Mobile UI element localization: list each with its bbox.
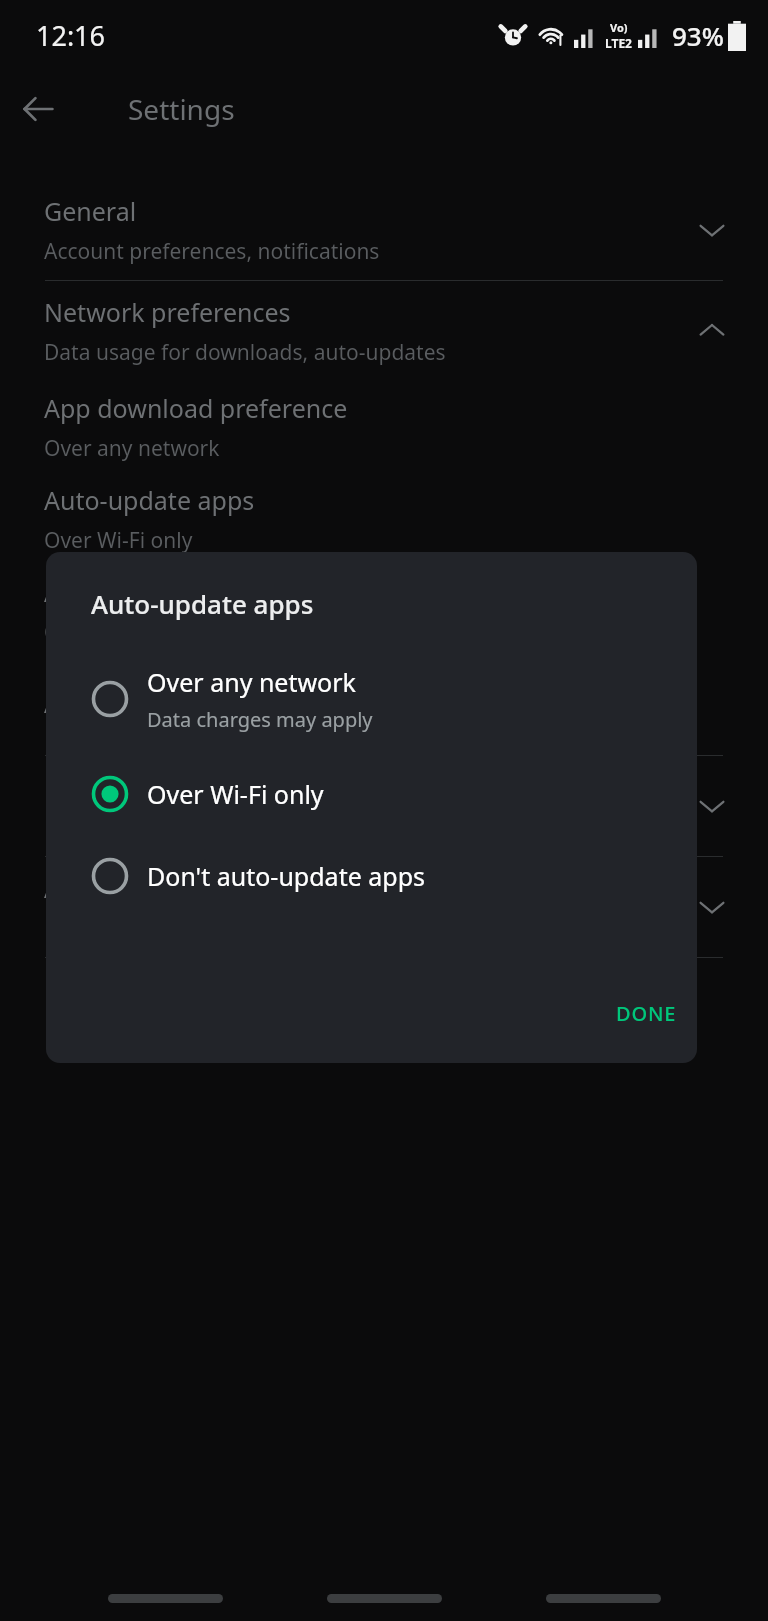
button[interactable]: Family (0, 756, 768, 856)
staticText: Network preferences (44, 295, 291, 329)
staticText: Over any network (44, 434, 220, 463)
button[interactable]: Back (78, 1578, 252, 1618)
staticText: General (44, 194, 137, 228)
button[interactable]: Auto-update apps (0, 473, 768, 565)
button[interactable]: Home (297, 1578, 471, 1618)
staticText: Family (44, 770, 121, 804)
staticText: LTE2 (605, 35, 632, 51)
staticText: DONE (616, 1000, 677, 1027)
button[interactable]: DONE (596, 988, 697, 1039)
button[interactable]: Auto-play videos (0, 565, 768, 657)
staticText: Auto-update apps (44, 483, 255, 517)
other: Collapse (686, 305, 738, 357)
staticText: Auto-update Play services (44, 686, 346, 720)
button[interactable]: App download preference (0, 381, 768, 473)
staticText: Data usage for downloads, auto-updates (44, 338, 446, 367)
button[interactable]: General (0, 180, 768, 280)
staticText: Don't auto-update apps (147, 859, 426, 893)
button[interactable]: Don't auto-update apps (46, 851, 697, 901)
button[interactable]: Over Wi-Fi only (46, 769, 697, 819)
staticText: Auto-play videos (44, 575, 239, 609)
staticText: Data charges may apply (147, 706, 373, 733)
staticText: Over Wi-Fi only (44, 526, 193, 555)
button[interactable]: Network preferences (0, 281, 768, 381)
staticText: Auto-update apps (91, 586, 314, 621)
staticText: Account preferences, notifications (44, 237, 380, 266)
staticText: App download preference (44, 391, 348, 425)
button[interactable]: Auto-update Play services (0, 657, 768, 749)
staticText: Settings (128, 90, 235, 128)
staticText: About (44, 871, 115, 905)
staticText: 12:16 (36, 17, 106, 54)
other: Expand (686, 204, 738, 256)
other: Expand (686, 780, 738, 832)
staticText: Over Wi-Fi only (44, 618, 193, 647)
button[interactable]: About (0, 857, 768, 957)
button[interactable]: Over any network (46, 659, 697, 739)
other: Expand (686, 881, 738, 933)
staticText: Over any network (147, 665, 356, 699)
staticText: Vo) (610, 20, 628, 35)
staticText: Over Wi-Fi only (147, 777, 324, 811)
button[interactable]: Recents (516, 1578, 690, 1618)
button[interactable]: Back (0, 71, 76, 147)
staticText: 93% (672, 18, 724, 53)
